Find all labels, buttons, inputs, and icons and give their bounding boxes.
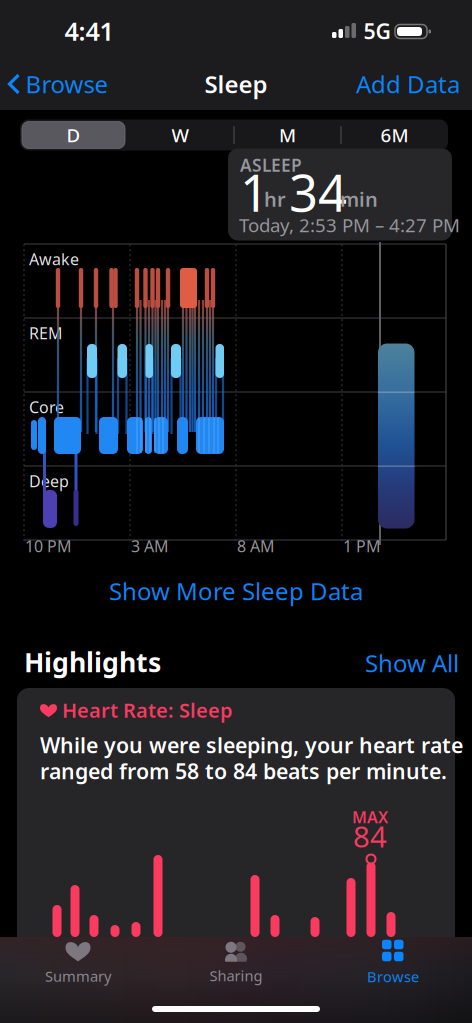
button[interactable]: Summary bbox=[23, 937, 133, 989]
staticText: D bbox=[66, 123, 80, 147]
button[interactable] bbox=[17, 688, 455, 1023]
staticText: Browse bbox=[367, 967, 419, 986]
staticText: REM bbox=[29, 322, 63, 344]
staticText: Core bbox=[29, 396, 64, 418]
staticText: Highlights bbox=[24, 644, 161, 680]
staticText: 3 AM bbox=[131, 535, 169, 557]
staticText: Sharing bbox=[209, 966, 262, 985]
staticText: Add Data bbox=[356, 68, 460, 100]
staticText: ASLEEP bbox=[240, 153, 302, 176]
staticText: 4:41 bbox=[64, 14, 113, 48]
button[interactable]: M bbox=[236, 121, 339, 148]
staticText: ranged from 58 to 84 beats per minute. bbox=[40, 757, 447, 785]
button[interactable]: Browse bbox=[7, 68, 108, 100]
button[interactable]: Browse bbox=[338, 937, 448, 989]
button[interactable]: 6M bbox=[343, 121, 446, 148]
staticText: min bbox=[340, 186, 378, 212]
button[interactable]: Sharing bbox=[181, 937, 291, 989]
staticText: 5G bbox=[363, 17, 390, 45]
staticText: 1 bbox=[240, 158, 269, 226]
staticText: W bbox=[171, 123, 189, 147]
staticText: Heart Rate: Sleep bbox=[62, 697, 233, 723]
button[interactable]: Show All bbox=[365, 647, 459, 679]
staticText: MAX bbox=[352, 806, 388, 828]
button[interactable]: D bbox=[22, 121, 125, 148]
staticText: 34 bbox=[289, 158, 347, 226]
button[interactable]: W bbox=[129, 121, 232, 148]
staticText: 6M bbox=[380, 123, 408, 147]
staticText: Deep bbox=[29, 470, 69, 492]
staticText: 8 AM bbox=[237, 535, 275, 557]
button[interactable]: Add Data bbox=[356, 68, 460, 100]
button[interactable]: Show More Sleep Data bbox=[109, 575, 363, 607]
staticText: Show More Sleep Data bbox=[109, 575, 363, 607]
staticText: Summary bbox=[45, 966, 111, 986]
staticText: Browse bbox=[25, 68, 108, 100]
staticText: Sleep bbox=[204, 68, 267, 100]
staticText: 84 bbox=[353, 816, 387, 855]
staticText: 1 PM bbox=[343, 535, 381, 557]
staticText: Today, 2:53 PM – 4:27 PM bbox=[239, 213, 460, 237]
staticText: While you were sleeping, your heart rate bbox=[40, 731, 463, 759]
staticText: M bbox=[279, 123, 296, 147]
staticText: hr bbox=[264, 186, 286, 212]
staticText: Show All bbox=[365, 647, 459, 679]
staticText: 10 PM bbox=[25, 535, 72, 557]
staticText: Awake bbox=[29, 248, 79, 270]
